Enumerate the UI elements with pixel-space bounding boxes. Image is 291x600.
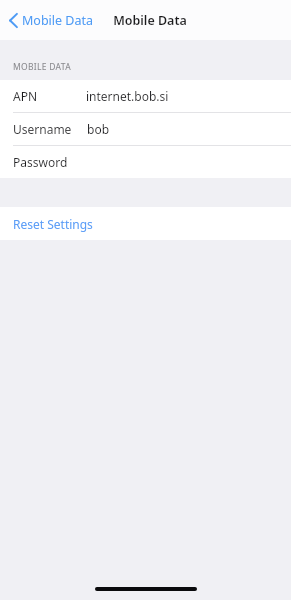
button[interactable]: Reset Settings [0, 207, 291, 240]
staticText: APN [13, 88, 38, 104]
staticText: Username [13, 121, 72, 137]
staticText: MOBILE DATA [13, 61, 71, 73]
staticText: Mobile Data [22, 12, 94, 29]
staticText: Mobile Data [113, 12, 187, 29]
staticText: bob [87, 121, 110, 137]
button[interactable]: Back [7, 8, 96, 33]
other: Back [9, 13, 18, 28]
button[interactable]: Username [0, 113, 291, 145]
button[interactable]: Password [0, 146, 291, 178]
staticText: internet.bob.si [86, 88, 169, 104]
staticText: Reset Settings [13, 216, 93, 232]
button[interactable]: APN [0, 80, 291, 112]
staticText: Password [13, 154, 68, 170]
